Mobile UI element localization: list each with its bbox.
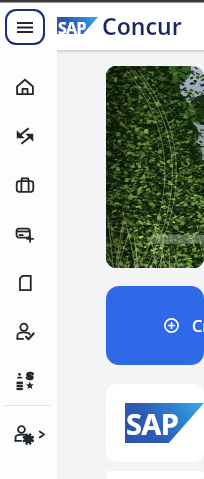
button[interactable]: Expense	[0, 111, 57, 160]
button[interactable]: Trips	[0, 160, 57, 209]
button[interactable]: Featured photo	[106, 66, 204, 268]
button[interactable]: Requests	[0, 356, 57, 405]
button[interactable]: Home	[0, 62, 57, 111]
button[interactable]: SAP	[106, 384, 204, 462]
button[interactable]: Open navigation menu	[7, 11, 43, 43]
staticText: Create	[192, 315, 204, 337]
button[interactable]: Add expense	[0, 209, 57, 258]
button[interactable]: Approvals	[0, 307, 57, 356]
button[interactable]: Create	[106, 286, 204, 365]
button[interactable]: Reports	[0, 258, 57, 307]
staticText: SAP	[126, 404, 178, 443]
staticText: Concur	[102, 10, 182, 41]
staticText: SAP	[58, 17, 86, 34]
button[interactable]: Profile settings	[0, 419, 57, 449]
